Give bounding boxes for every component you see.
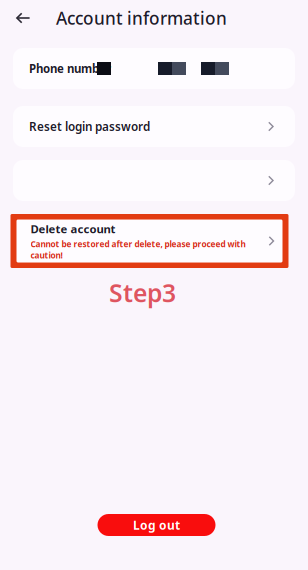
- button[interactable]: Delete account: [10, 214, 297, 268]
- button[interactable]: Phone number: [13, 48, 295, 89]
- staticText: Account information: [56, 6, 227, 30]
- staticText: Phone number: [29, 61, 111, 76]
- button[interactable]: Back: [7, 3, 39, 33]
- staticText: Step3: [109, 276, 176, 310]
- button[interactable]: Reset login password: [13, 106, 295, 147]
- staticText: Reset login password: [29, 118, 150, 134]
- staticText: Delete account: [30, 221, 115, 236]
- staticText: Cannot be restored after delete, please …: [30, 238, 245, 261]
- button[interactable]: [13, 160, 295, 201]
- staticText: Log out: [133, 517, 180, 533]
- button[interactable]: Log out: [92, 514, 215, 536]
